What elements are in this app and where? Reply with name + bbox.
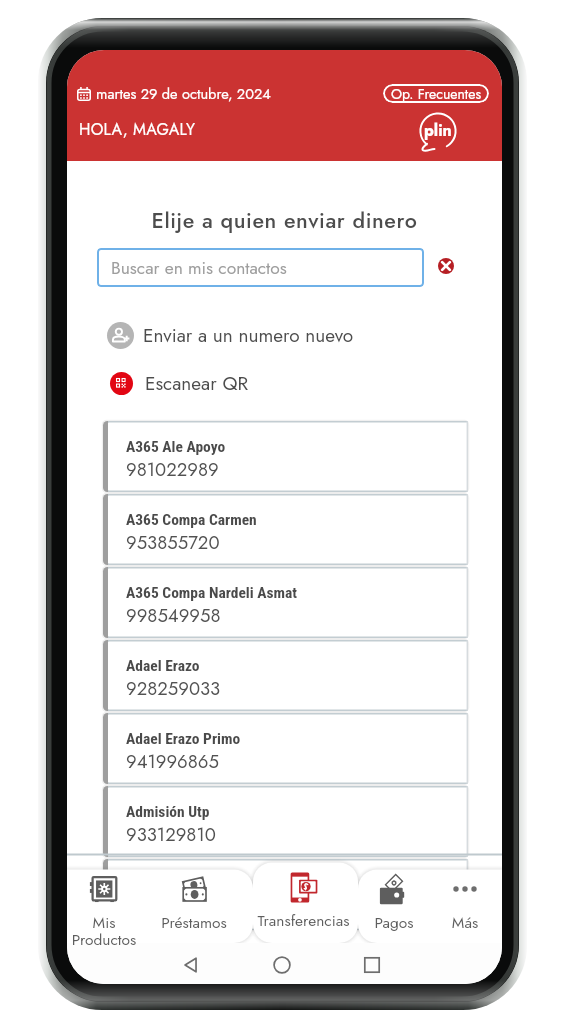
staticText: A365 Compa Carmen: [126, 511, 257, 529]
button[interactable]: Transferencias: [251, 863, 356, 944]
staticText: plin: [424, 119, 452, 142]
staticText: A365 Compa Nardeli Asmat: [126, 584, 298, 602]
staticText: 981022989: [126, 456, 219, 483]
staticText: Adriana Lozano: [126, 876, 223, 894]
staticText: 933129810: [126, 821, 216, 848]
staticText: Pagos: [346, 911, 442, 933]
button[interactable]: Más: [417, 870, 502, 944]
button[interactable]: Back: [182, 956, 200, 974]
staticText: Préstamos: [146, 911, 242, 933]
button[interactable]: plin: [417, 110, 459, 152]
staticText: HOLA, MAGALY: [79, 118, 196, 141]
button[interactable]: Enviar a un numero nuevo: [107, 314, 437, 356]
button[interactable]: Admisión Utp: [103, 786, 468, 857]
button[interactable]: Adael Erazo: [103, 640, 468, 711]
staticText: 953855720: [126, 529, 220, 556]
staticText: Transferencias: [251, 909, 356, 931]
button[interactable]: Limpiar búsqueda: [433, 253, 459, 279]
staticText: Más: [417, 911, 502, 933]
staticText: Op. Frecuentes: [391, 84, 482, 103]
button[interactable]: A365 Ale Apoyo: [103, 421, 468, 492]
button[interactable]: Escanear QR: [110, 362, 440, 404]
staticText: Adael Erazo: [126, 657, 200, 675]
button[interactable]: Home: [273, 956, 291, 974]
staticText: Admisión Utp: [126, 803, 210, 821]
button[interactable]: Adriana Lozano: [103, 859, 468, 930]
staticText: martes 29 de octubre, 2024: [96, 83, 271, 104]
staticText: A365 Ale Apoyo: [126, 438, 226, 456]
staticText: Enviar a un numero nuevo: [143, 322, 354, 349]
button[interactable]: Recents: [363, 956, 381, 974]
staticText: 941996865: [126, 748, 219, 775]
staticText: Buscar en mis contactos: [111, 255, 287, 280]
button[interactable]: Mis Productos: [67, 870, 152, 944]
staticText: Escanear QR: [145, 370, 249, 397]
staticText: 998549958: [126, 602, 221, 629]
button[interactable]: A365 Compa Nardeli Asmat: [103, 567, 468, 638]
staticText: 987512345: [126, 894, 217, 921]
staticText: 928259033: [126, 675, 221, 702]
button[interactable]: Op. Frecuentes: [383, 84, 489, 103]
button[interactable]: A365 Compa Carmen: [103, 494, 468, 565]
button[interactable]: Buscar en mis contactos: [97, 248, 424, 287]
staticText: Elije a quien enviar dinero: [67, 205, 502, 236]
button[interactable]: Préstamos: [146, 870, 242, 944]
button[interactable]: Adael Erazo Primo: [103, 713, 468, 784]
button[interactable]: Pagos: [346, 870, 442, 944]
staticText: Mis Productos: [67, 911, 152, 951]
staticText: Adael Erazo Primo: [126, 730, 241, 748]
